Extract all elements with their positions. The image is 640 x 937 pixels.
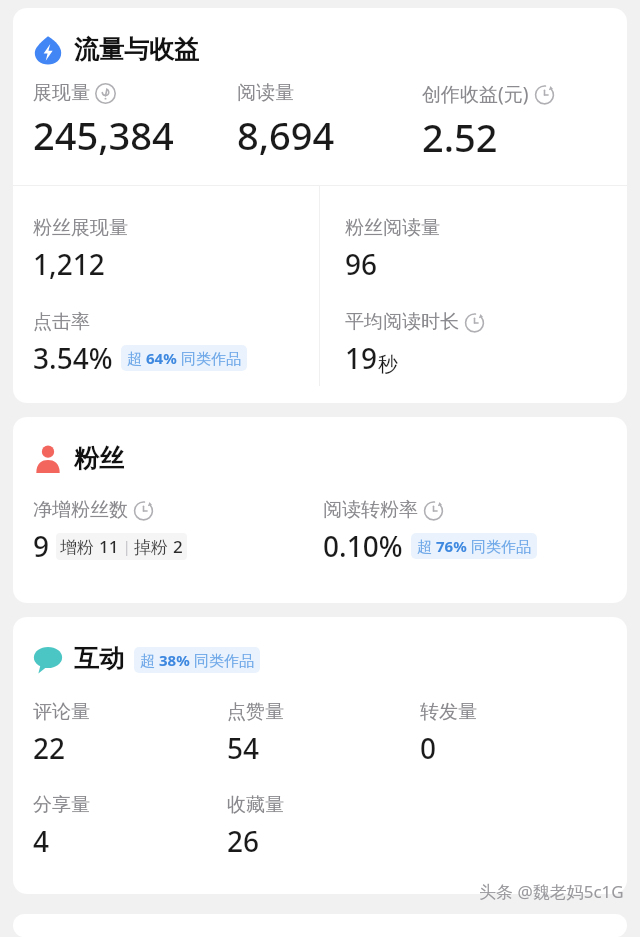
button[interactable]: 超 xyxy=(134,647,260,673)
staticText: 超 xyxy=(417,536,436,556)
staticText: 净增粉丝数 xyxy=(33,498,128,522)
staticText: 粉丝展现量 xyxy=(33,216,128,240)
staticText: 粉丝阅读量 xyxy=(345,216,440,240)
staticText: 展现量 xyxy=(33,81,90,105)
staticText: 头条 @魏老妈5c1G xyxy=(479,880,624,903)
button[interactable]: 超 xyxy=(121,345,247,371)
staticText: 平均阅读时长 xyxy=(345,310,459,334)
staticText: 64% xyxy=(146,348,177,368)
staticText: 0 xyxy=(420,729,437,767)
staticText: 22 xyxy=(33,729,66,767)
staticText: 分享量 xyxy=(33,793,90,817)
staticText: 同类作品 xyxy=(177,348,241,368)
button[interactable]: 点赞量 xyxy=(227,700,420,767)
staticText: 245,384 xyxy=(33,109,174,161)
staticText: 9 xyxy=(33,527,50,565)
staticText: 流量与收益 xyxy=(74,34,199,65)
button[interactable]: 互动 xyxy=(13,617,627,678)
button[interactable]: 转发量 xyxy=(420,700,613,767)
button[interactable]: 超 xyxy=(411,533,537,559)
staticText: 秒 xyxy=(378,352,398,377)
staticText: | xyxy=(119,537,134,556)
staticText: 增粉 xyxy=(60,535,99,558)
staticText: 点击率 xyxy=(33,310,90,334)
staticText: 同类作品 xyxy=(190,650,254,670)
staticText: 3.54% xyxy=(33,339,113,377)
staticText: 点赞量 xyxy=(227,700,284,724)
staticText: 54 xyxy=(227,729,260,767)
staticText: 4 xyxy=(33,822,50,860)
staticText: 38% xyxy=(159,650,190,670)
button[interactable]: 流量与收益 xyxy=(13,8,627,69)
staticText: 收藏量 xyxy=(227,793,284,817)
staticText: 26 xyxy=(227,822,260,860)
staticText: 11 xyxy=(99,535,119,558)
staticText: 96 xyxy=(345,245,378,283)
staticText: 转发量 xyxy=(420,700,477,724)
button[interactable]: 收藏量 xyxy=(227,793,420,860)
staticText: 互动 xyxy=(74,643,124,674)
button[interactable]: 评论量 xyxy=(33,700,227,767)
staticText: 阅读量 xyxy=(237,81,294,105)
button[interactable]: 分享量 xyxy=(33,793,227,860)
staticText: 创作收益(元) xyxy=(422,81,529,107)
staticText: 超 xyxy=(127,348,146,368)
staticText: 2 xyxy=(173,535,183,558)
staticText: 粉丝 xyxy=(74,443,124,474)
staticText: 阅读转粉率 xyxy=(323,498,418,522)
button[interactable]: 粉丝 xyxy=(13,417,627,478)
staticText: 评论量 xyxy=(33,700,90,724)
staticText: 8,694 xyxy=(237,109,335,161)
staticText: 19 xyxy=(345,339,378,377)
staticText: 76% xyxy=(436,536,467,556)
staticText: 0.10% xyxy=(323,527,403,565)
staticText: 同类作品 xyxy=(467,536,531,556)
staticText: 1,212 xyxy=(33,245,105,283)
staticText: 2.52 xyxy=(422,111,498,163)
staticText: 超 xyxy=(140,650,159,670)
staticText: 掉粉 xyxy=(134,535,173,558)
